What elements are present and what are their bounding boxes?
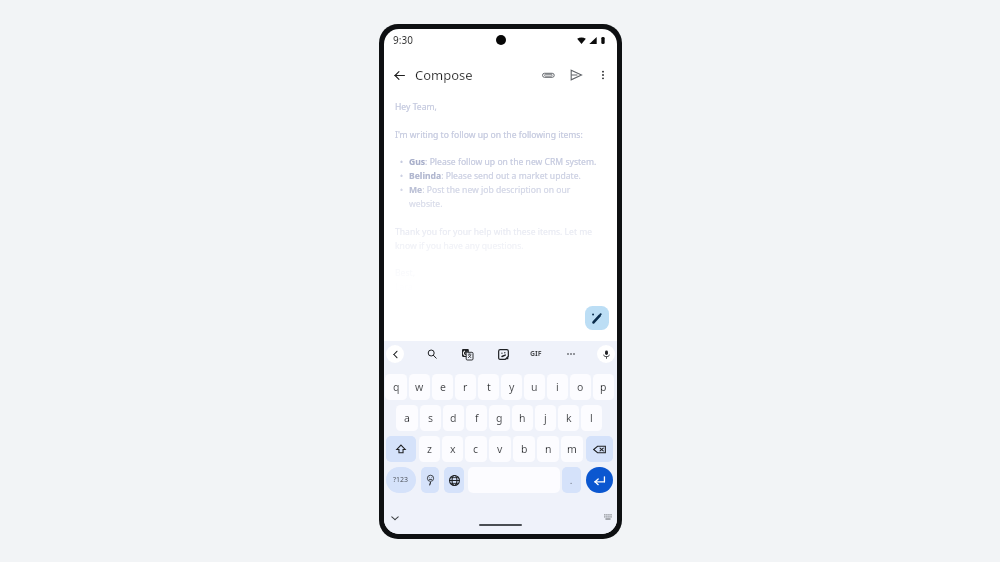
button[interactable]: Emoji (421, 467, 439, 493)
staticText: v (497, 442, 503, 456)
button[interactable]: f (466, 405, 487, 431)
staticText: b (521, 442, 528, 456)
staticText: r (463, 380, 468, 394)
button[interactable]: Stickers (494, 345, 512, 363)
button[interactable]: m (561, 436, 583, 462)
button[interactable]: Translate (458, 345, 476, 363)
button[interactable]: i (547, 374, 568, 400)
button[interactable]: v (489, 436, 511, 462)
staticText: website. (409, 198, 443, 210)
staticText: f (475, 411, 479, 425)
staticText: Gus: Please follow up on the new CRM sys… (409, 156, 597, 168)
button[interactable]: . (562, 467, 581, 493)
button[interactable]: Send (566, 65, 586, 85)
button[interactable]: GIF (527, 345, 545, 363)
button[interactable]: ?123 (386, 467, 416, 493)
button[interactable]: Shift (386, 436, 416, 462)
button[interactable]: e (432, 374, 453, 400)
staticText: q (393, 380, 400, 394)
staticText: u (531, 380, 538, 394)
button[interactable]: j (535, 405, 556, 431)
staticText: . (570, 475, 573, 486)
staticText: m (567, 442, 577, 456)
staticText: s (428, 411, 434, 425)
button[interactable]: b (513, 436, 535, 462)
button[interactable]: Keyboard settings (602, 512, 614, 524)
staticText: e (440, 380, 446, 394)
staticText: h (519, 411, 526, 425)
button[interactable]: q (385, 374, 407, 400)
button[interactable]: x (442, 436, 463, 462)
staticText: d (450, 411, 457, 425)
button[interactable]: d (443, 405, 464, 431)
staticText: Hey Team, (395, 101, 437, 113)
button[interactable]: t (478, 374, 499, 400)
staticText: • (400, 170, 404, 181)
staticText: y (509, 380, 515, 394)
button[interactable]: Enter (586, 467, 613, 493)
button[interactable]: Hide keyboard (388, 511, 402, 525)
button[interactable]: w (409, 374, 430, 400)
staticText: a (404, 411, 410, 425)
staticText: t (487, 380, 491, 394)
button[interactable]: u (524, 374, 545, 400)
staticText: x (450, 442, 456, 456)
staticText: know if you have any questions. (395, 240, 524, 252)
staticText: Belinda: Please send out a market update… (409, 170, 581, 182)
button[interactable]: l (581, 405, 602, 431)
staticText: o (577, 380, 584, 394)
button[interactable]: c (465, 436, 487, 462)
staticText: Thank you for your help with these items… (395, 226, 593, 238)
button[interactable]: y (501, 374, 522, 400)
staticText: • (400, 184, 404, 195)
button[interactable]: Backspace (586, 436, 613, 462)
button[interactable]: More options (562, 345, 580, 363)
button[interactable]: h (512, 405, 533, 431)
button[interactable]: s (420, 405, 441, 431)
button[interactable]: Help me write (585, 306, 609, 330)
staticText: Me: Post the new job description on our (409, 184, 571, 196)
button[interactable]: Back (386, 345, 404, 363)
button[interactable]: g (489, 405, 510, 431)
staticText: ?123 (393, 475, 409, 485)
staticText: k (566, 411, 572, 425)
button[interactable]: Switch language (444, 467, 464, 493)
staticText: I'm writing to follow up on the followin… (395, 129, 583, 141)
button[interactable]: k (558, 405, 579, 431)
staticText: • (400, 156, 404, 167)
staticText: z (427, 442, 432, 456)
staticText: g (496, 411, 503, 425)
staticText: i (556, 380, 559, 394)
staticText: l (590, 411, 593, 425)
staticText: n (545, 442, 552, 456)
button[interactable]: z (419, 436, 440, 462)
button[interactable]: Attach file (538, 65, 558, 85)
button[interactable]: a (396, 405, 418, 431)
staticText: c (473, 442, 479, 456)
button[interactable]: o (570, 374, 591, 400)
button[interactable]: n (537, 436, 559, 462)
button[interactable]: p (593, 374, 614, 400)
button[interactable]: Voice input (597, 345, 615, 363)
staticText: p (600, 380, 607, 394)
staticText: j (544, 411, 547, 425)
staticText: Compose (415, 66, 473, 84)
staticText: w (415, 380, 424, 394)
button[interactable]: Search (423, 345, 441, 363)
button[interactable]: r (455, 374, 476, 400)
button[interactable]: Back (389, 65, 409, 85)
staticText: 9:30 (393, 33, 413, 47)
button[interactable]: More options (593, 65, 613, 85)
staticText: GIF (530, 349, 542, 359)
